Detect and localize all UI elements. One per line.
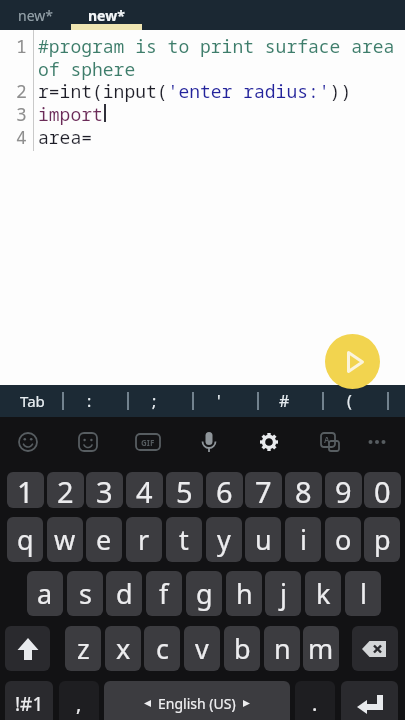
staticText: 7 — [255, 472, 272, 508]
staticText: c — [156, 630, 169, 667]
staticText: l — [360, 575, 367, 612]
button[interactable] — [357, 422, 397, 462]
staticText: v — [195, 630, 209, 667]
staticText: w — [54, 521, 76, 558]
button[interactable]: English (US) — [104, 681, 290, 720]
staticText: new* — [18, 6, 53, 25]
button[interactable]: w — [47, 517, 83, 562]
button[interactable]: 0 — [364, 472, 401, 508]
staticText: 1 — [17, 472, 34, 508]
staticText: q — [17, 521, 34, 558]
button[interactable]: n — [264, 626, 300, 671]
button[interactable]: b — [224, 626, 260, 671]
button[interactable]: u — [245, 517, 281, 562]
button[interactable]: # — [268, 385, 300, 417]
staticText: b — [234, 630, 251, 667]
staticText: i — [300, 521, 307, 558]
staticText: 9 — [335, 472, 352, 508]
staticText: Tab — [20, 391, 45, 411]
staticText: new* — [88, 6, 125, 25]
button[interactable] — [68, 422, 108, 462]
button[interactable] — [325, 334, 380, 389]
staticText: 6 — [216, 472, 233, 508]
button[interactable] — [8, 422, 48, 462]
button[interactable]: d — [106, 571, 142, 616]
staticText: ' — [217, 390, 221, 412]
button[interactable]: s — [67, 571, 103, 616]
staticText: r=int(input('enter radius:')) — [38, 79, 352, 104]
button[interactable]: k — [305, 571, 341, 616]
button[interactable]: , — [59, 681, 99, 720]
staticText: import — [38, 102, 103, 127]
button[interactable]: 5 — [166, 472, 203, 508]
button[interactable]: 1 — [7, 472, 44, 508]
button[interactable]: o — [325, 517, 361, 562]
staticText: s — [79, 575, 92, 612]
button[interactable]: h — [226, 571, 262, 616]
staticText: ( — [347, 390, 352, 412]
button[interactable]: m — [303, 626, 339, 671]
button[interactable]: 7 — [245, 472, 282, 508]
button[interactable]: x — [105, 626, 141, 671]
staticText: r — [138, 521, 150, 558]
staticText: area= — [38, 125, 92, 150]
button[interactable]: 6 — [206, 472, 243, 508]
button[interactable]: 4 — [126, 472, 163, 508]
button[interactable]: : — [73, 385, 105, 417]
staticText: 5 — [176, 472, 193, 508]
button[interactable] — [189, 422, 229, 462]
button[interactable]: ( — [333, 385, 365, 417]
staticText: z — [77, 630, 90, 667]
button[interactable]: new* — [71, 0, 142, 30]
button[interactable]: new* — [0, 0, 71, 30]
staticText: 3 — [16, 102, 27, 127]
staticText: d — [116, 575, 133, 612]
button[interactable] — [352, 626, 398, 671]
button[interactable]: r — [126, 517, 162, 562]
staticText: f — [159, 575, 169, 612]
button[interactable]: 8 — [285, 472, 322, 508]
staticText: A — [324, 434, 330, 445]
button[interactable] — [341, 681, 398, 720]
button[interactable]: ' — [203, 385, 235, 417]
staticText: k — [316, 575, 331, 612]
button[interactable]: 9 — [325, 472, 362, 508]
staticText: : — [87, 390, 92, 412]
staticText: o — [335, 521, 352, 558]
button[interactable] — [249, 422, 289, 462]
button[interactable]: ; — [138, 385, 170, 417]
staticText: m — [308, 630, 334, 667]
staticText: 2 — [57, 472, 74, 508]
staticText: 8 — [295, 472, 312, 508]
button[interactable]: g — [186, 571, 222, 616]
button[interactable]: p — [364, 517, 400, 562]
button[interactable]: y — [206, 517, 242, 562]
button[interactable]: j — [265, 571, 301, 616]
button[interactable]: GIF — [128, 422, 168, 462]
button[interactable]: e — [86, 517, 122, 562]
button[interactable]: f — [146, 571, 182, 616]
button[interactable]: 3 — [86, 472, 123, 508]
button[interactable]: !#1 — [5, 681, 53, 720]
button[interactable]: l — [345, 571, 381, 616]
button[interactable]: c — [144, 626, 180, 671]
staticText: u — [255, 521, 272, 558]
button[interactable]: A — [310, 422, 350, 462]
staticText: #program is to print surface area — [38, 34, 395, 59]
button[interactable]: q — [7, 517, 43, 562]
button[interactable]: z — [65, 626, 101, 671]
staticText: , — [76, 690, 82, 717]
button[interactable] — [5, 626, 50, 671]
staticText: t — [179, 521, 189, 558]
button[interactable]: a — [27, 571, 63, 616]
button[interactable]: v — [184, 626, 220, 671]
button[interactable]: i — [285, 517, 321, 562]
staticText: a — [37, 575, 53, 612]
staticText: ; — [152, 390, 157, 412]
staticText: . — [312, 690, 318, 717]
button[interactable]: . — [295, 681, 335, 720]
button[interactable]: t — [166, 517, 202, 562]
button[interactable]: Tab — [10, 385, 55, 417]
button[interactable]: 2 — [47, 472, 84, 508]
staticText: n — [274, 630, 291, 667]
